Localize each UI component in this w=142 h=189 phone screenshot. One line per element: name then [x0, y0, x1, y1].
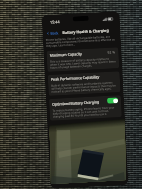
staticText: Optimized Battery Charging [52, 99, 100, 107]
staticText: Battery Health & Charging [62, 28, 109, 35]
staticText: Back [50, 30, 59, 36]
staticText: Built-in dynamic software and hardware s… [51, 80, 117, 94]
staticText: To reduce battery aging, iPhone learns f… [52, 105, 119, 119]
button[interactable]: Maximum Capacity [46, 47, 119, 72]
button[interactable]: Peak Performance Capability [48, 71, 121, 96]
button[interactable]: Back [45, 30, 59, 36]
staticText: This is a measure of battery capacity re… [50, 56, 116, 70]
staticText: 92 % [107, 49, 116, 55]
button[interactable]: Optimized Battery Charging [49, 95, 122, 121]
staticText: Maximum Capacity [49, 51, 83, 58]
staticText: Phone batteries, like all rechargeable b… [46, 34, 118, 48]
staticText: 15:44 [50, 19, 60, 25]
button[interactable]: 15:44 [0, 0, 142, 189]
staticText: Peak Performance Capability [51, 74, 100, 82]
button[interactable]: Optimized Battery Charging [52, 97, 118, 107]
